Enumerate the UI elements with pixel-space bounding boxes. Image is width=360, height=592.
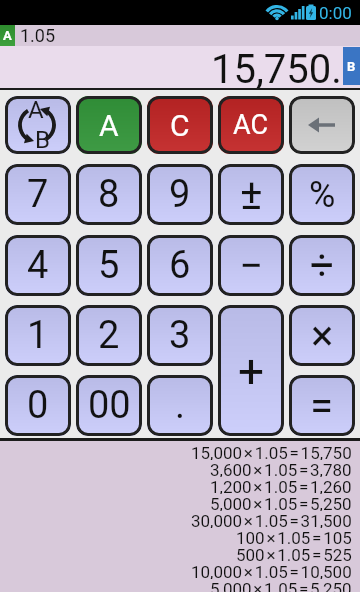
staticText: − [239, 241, 264, 290]
button[interactable]: − [218, 235, 284, 296]
staticText: 00 [88, 383, 131, 428]
staticText: 9 [169, 172, 191, 217]
staticText: 100 × 1.05 = 105 [236, 528, 352, 545]
button[interactable]: 2 [76, 305, 142, 366]
staticText: 6 [169, 243, 191, 288]
button[interactable]: AC [218, 96, 284, 154]
button[interactable]: 1 [5, 305, 71, 366]
staticText: 2 [98, 313, 120, 358]
staticText: A [28, 96, 44, 124]
button[interactable]: % [289, 164, 355, 225]
staticText: A [99, 108, 119, 143]
staticText: 15,000 × 1.05 = 15,750 [191, 443, 352, 460]
button[interactable]: 6 [147, 235, 213, 296]
button[interactable]: 00 [76, 375, 142, 436]
button[interactable]: 3 [147, 305, 213, 366]
button[interactable]: × [289, 305, 355, 366]
staticText: 15,750. [211, 46, 342, 88]
staticText: ÷ [310, 241, 334, 290]
staticText: = [310, 381, 334, 430]
staticText: B [347, 59, 356, 74]
staticText: C [170, 108, 190, 143]
staticText: 1.05 [20, 25, 56, 46]
staticText: % [309, 174, 336, 216]
staticText: B [35, 126, 50, 154]
staticText: 1,200 × 1.05 = 1,260 [210, 477, 352, 494]
button[interactable]: = [289, 375, 355, 436]
staticText: × [311, 311, 334, 360]
staticText: 5,000 × 1.05 = 5,250 [210, 494, 352, 511]
staticText: 0:00 [319, 3, 352, 23]
button[interactable]: 0 [5, 375, 71, 436]
staticText: 1 [27, 313, 49, 358]
staticText: 0 [27, 383, 49, 428]
button[interactable]: + [218, 305, 284, 436]
staticText: A [3, 28, 12, 43]
staticText: AC [233, 109, 269, 141]
button[interactable]: C [147, 96, 213, 154]
staticText: 500 × 1.05 = 525 [236, 545, 352, 562]
staticText: 7 [27, 172, 49, 217]
button[interactable]: A [5, 96, 71, 154]
button[interactable]: A [76, 96, 142, 154]
staticText: + [238, 344, 265, 398]
button[interactable]: ÷ [289, 235, 355, 296]
button[interactable]: 8 [76, 164, 142, 225]
staticText: 30,000 × 1.05 = 31,500 [191, 511, 352, 528]
button[interactable]: 9 [147, 164, 213, 225]
button[interactable]: 5 [76, 235, 142, 296]
staticText: ± [240, 170, 263, 219]
staticText: 4 [27, 243, 49, 288]
button[interactable]: 4 [5, 235, 71, 296]
staticText: 5 [98, 243, 120, 288]
button[interactable] [289, 96, 355, 154]
button[interactable]: 7 [5, 164, 71, 225]
staticText: 8 [98, 172, 120, 217]
button[interactable]: ± [218, 164, 284, 225]
staticText: . [175, 383, 186, 428]
staticText: 3,600 × 1.05 = 3,780 [210, 460, 352, 477]
staticText: 3 [169, 313, 191, 358]
staticText: 5,000 × 1.05 = 5,250 [210, 579, 352, 592]
staticText: 10,000 × 1.05 = 10,500 [191, 562, 352, 579]
button[interactable]: . [147, 375, 213, 436]
